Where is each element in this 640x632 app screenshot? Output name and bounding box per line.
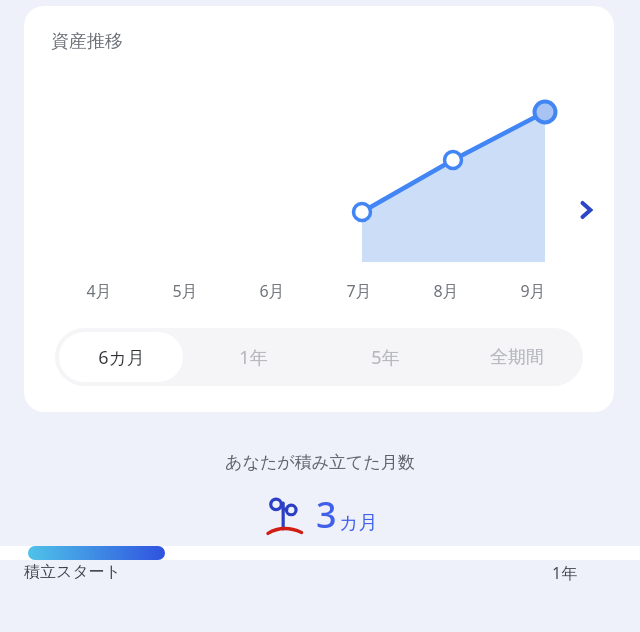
- button[interactable]: 次へ: [564, 188, 608, 232]
- staticText: 8月: [433, 280, 459, 302]
- staticText: 積立スタート: [24, 562, 122, 582]
- staticText: 3: [316, 490, 337, 539]
- button[interactable]: 5年: [323, 332, 447, 382]
- staticText: 5月: [172, 280, 198, 302]
- button[interactable]: 全期間: [455, 332, 579, 382]
- button[interactable]: 1年: [191, 332, 315, 382]
- staticText: 7月: [346, 280, 372, 302]
- staticText: あなたが積み立てた月数: [0, 452, 640, 473]
- staticText: 1年: [239, 345, 268, 370]
- staticText: 1年: [552, 562, 578, 584]
- button[interactable]: 資産推移: [24, 6, 614, 412]
- staticText: 全期間: [490, 346, 544, 369]
- staticText: 4月: [86, 280, 112, 302]
- staticText: 5年: [371, 345, 400, 370]
- button[interactable]: 6カ月: [59, 332, 183, 382]
- staticText: 6月: [259, 280, 285, 302]
- staticText: 9月: [520, 280, 546, 302]
- staticText: カ月: [339, 511, 378, 535]
- staticText: 資産推移: [51, 30, 123, 53]
- staticText: 6カ月: [98, 345, 145, 370]
